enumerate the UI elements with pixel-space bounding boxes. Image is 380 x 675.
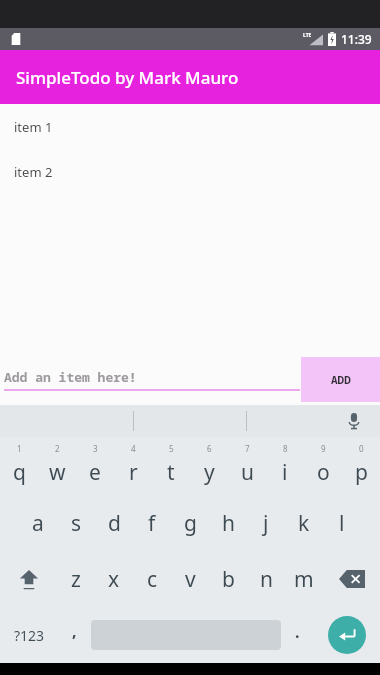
button[interactable]: , (58, 607, 91, 663)
button[interactable]: 7 (228, 439, 266, 495)
button[interactable]: d (95, 495, 133, 551)
staticText: ?123 (14, 626, 45, 645)
staticText: b (222, 565, 235, 594)
staticText: 0 (359, 443, 364, 454)
button[interactable]: m (285, 551, 323, 607)
staticText: item 1 (14, 118, 53, 136)
button[interactable]: 6 (190, 439, 228, 495)
staticText: a (32, 509, 44, 538)
button[interactable]: 4 (114, 439, 152, 495)
staticText: j (263, 509, 269, 538)
staticText: 8 (283, 443, 288, 454)
staticText: c (147, 565, 158, 594)
button[interactable]: j (247, 495, 285, 551)
button[interactable]: SimpleTodo by Mark Mauro (0, 50, 380, 104)
staticText: LTE (303, 32, 312, 39)
staticText: 2 (55, 443, 60, 454)
staticText: g (184, 509, 197, 538)
button[interactable]: g (171, 495, 209, 551)
staticText: SimpleTodo by Mark Mauro (16, 66, 239, 89)
staticText: w (49, 458, 66, 487)
staticText: y (204, 458, 215, 487)
button[interactable]: l (323, 495, 361, 551)
button[interactable]: 0 (342, 439, 380, 495)
staticText: 5 (169, 443, 174, 454)
button[interactable]: 2 (38, 439, 76, 495)
staticText: , (72, 620, 77, 642)
staticText: r (129, 458, 138, 487)
button[interactable]: c (133, 551, 171, 607)
button[interactable]: 3 (76, 439, 114, 495)
button[interactable]: ADD (301, 357, 380, 402)
button[interactable]: n (247, 551, 285, 607)
staticText: s (71, 509, 82, 538)
button[interactable]: ?123 (0, 607, 58, 663)
staticText: 4 (131, 443, 136, 454)
staticText: e (89, 458, 101, 487)
staticText: d (108, 509, 121, 538)
staticText: u (241, 458, 254, 487)
button[interactable]: Backspace (323, 551, 380, 607)
button[interactable]: h (209, 495, 247, 551)
staticText: Add an item here! (4, 368, 137, 386)
button[interactable]: Add an item here! (4, 368, 300, 391)
staticText: x (108, 565, 120, 594)
staticText: i (282, 458, 288, 487)
button[interactable]: 5 (152, 439, 190, 495)
staticText: 11:39 (341, 31, 372, 47)
staticText: h (222, 509, 235, 538)
button[interactable]: Shift (0, 551, 57, 607)
staticText: item 2 (14, 163, 53, 181)
button[interactable]: s (57, 495, 95, 551)
staticText: q (13, 458, 26, 487)
button[interactable]: v (171, 551, 209, 607)
button[interactable]: 8 (266, 439, 304, 495)
button[interactable]: k (285, 495, 323, 551)
staticText: . (295, 621, 300, 643)
button[interactable]: a (19, 495, 57, 551)
button[interactable]: x (95, 551, 133, 607)
staticText: o (317, 458, 330, 487)
staticText: ADD (331, 372, 351, 387)
staticText: 6 (207, 443, 212, 454)
staticText: n (260, 565, 273, 594)
button[interactable]: b (209, 551, 247, 607)
staticText: f (148, 509, 156, 538)
staticText: z (71, 565, 81, 594)
staticText: 7 (245, 443, 250, 454)
staticText: 1 (17, 443, 22, 454)
button[interactable]: 1 (0, 439, 38, 495)
button[interactable]: . (281, 607, 314, 663)
staticText: v (185, 565, 196, 594)
staticText: k (298, 509, 310, 538)
staticText: m (294, 565, 314, 594)
button[interactable]: item 2 (0, 149, 380, 194)
staticText: t (167, 458, 175, 487)
staticText: 9 (321, 443, 326, 454)
staticText: p (355, 458, 368, 487)
button[interactable]: Voice input (342, 409, 366, 433)
button[interactable]: Enter (314, 607, 380, 663)
button[interactable]: item 1 (0, 104, 380, 149)
staticText: l (339, 509, 345, 538)
button[interactable]: z (57, 551, 95, 607)
button[interactable]: 9 (304, 439, 342, 495)
staticText: 3 (93, 443, 98, 454)
button[interactable]: f (133, 495, 171, 551)
